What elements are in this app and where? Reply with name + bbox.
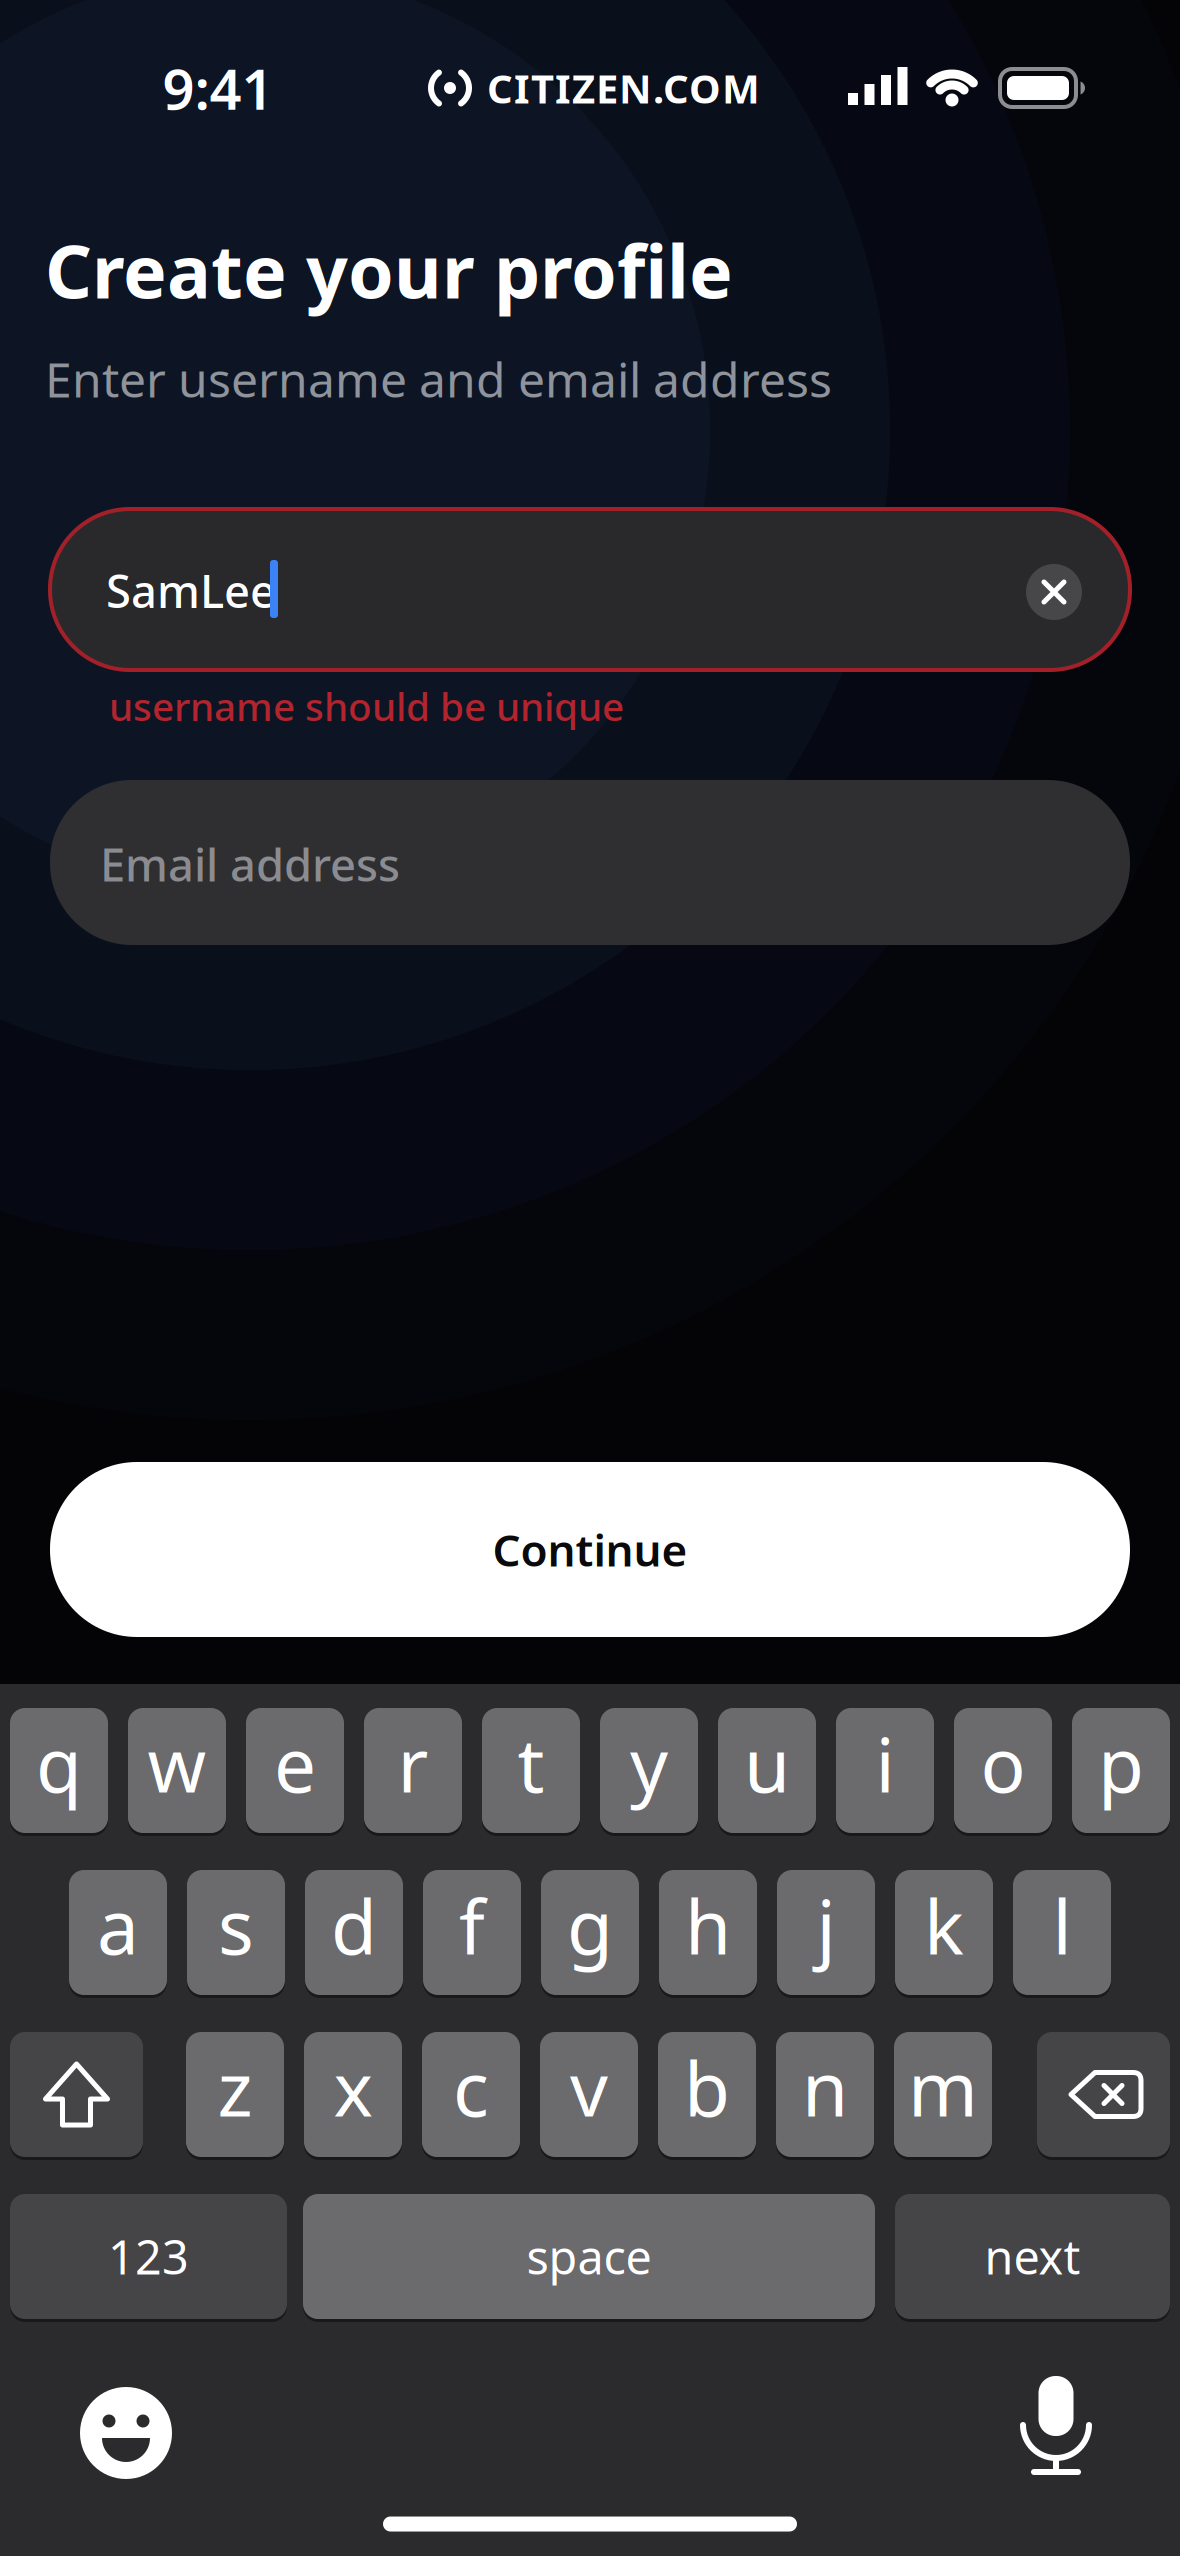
button[interactable]: Delete — [1037, 2030, 1170, 2158]
button[interactable]: l — [1013, 1868, 1111, 1996]
staticText: x — [333, 2038, 372, 2137]
staticText: Continue — [492, 1520, 687, 1579]
staticText: t — [517, 1714, 544, 1813]
button[interactable]: p — [1072, 1706, 1170, 1834]
staticText: 123 — [108, 2225, 189, 2287]
staticText: h — [685, 1876, 731, 1975]
button[interactable]: h — [659, 1868, 757, 1996]
button[interactable]: SamLee — [50, 509, 1130, 670]
staticText: g — [567, 1876, 613, 1975]
staticText: q — [36, 1714, 82, 1813]
button[interactable]: a — [69, 1868, 167, 1996]
button[interactable]: space — [303, 2192, 875, 2320]
staticText: l — [1052, 1876, 1071, 1975]
staticText: p — [1098, 1714, 1144, 1813]
button[interactable]: z — [186, 2030, 284, 2158]
button[interactable]: f — [423, 1868, 521, 1996]
button[interactable]: Emoji — [80, 2387, 172, 2479]
button[interactable]: y — [600, 1706, 698, 1834]
button[interactable]: m — [894, 2030, 992, 2158]
staticText: next — [984, 2225, 1080, 2287]
button[interactable]: s — [187, 1868, 285, 1996]
staticText: b — [684, 2038, 730, 2137]
button[interactable]: o — [954, 1706, 1052, 1834]
button[interactable]: c — [422, 2030, 520, 2158]
staticText: z — [217, 2038, 252, 2137]
button[interactable]: Continue — [50, 1462, 1130, 1637]
staticText: j — [816, 1876, 835, 1975]
staticText: CITIZEN.COM — [487, 61, 760, 114]
button[interactable]: e — [246, 1706, 344, 1834]
staticText: c — [453, 2038, 489, 2137]
button[interactable]: q — [10, 1706, 108, 1834]
staticText: i — [875, 1714, 894, 1813]
staticText: n — [802, 2038, 848, 2137]
staticText: Enter username and email address — [45, 347, 832, 411]
staticText: d — [331, 1876, 377, 1975]
button[interactable]: Email address — [50, 780, 1130, 945]
staticText: y — [630, 1714, 668, 1813]
button[interactable]: r — [364, 1706, 462, 1834]
staticText: v — [570, 2038, 608, 2137]
button[interactable]: Dictation — [999, 2371, 1113, 2485]
button[interactable]: w — [128, 1706, 226, 1834]
button[interactable]: n — [776, 2030, 874, 2158]
staticText: username should be unique — [109, 680, 624, 732]
button[interactable]: i — [836, 1706, 934, 1834]
staticText: 9:41 — [162, 51, 273, 125]
button[interactable]: x — [304, 2030, 402, 2158]
staticText: s — [218, 1876, 254, 1975]
staticText: space — [526, 2225, 651, 2287]
staticText: f — [459, 1876, 485, 1975]
staticText: w — [147, 1714, 206, 1813]
staticText: k — [924, 1876, 964, 1975]
staticText: SamLee — [106, 560, 276, 621]
button[interactable]: d — [305, 1868, 403, 1996]
staticText: Email address — [100, 834, 400, 894]
staticText: u — [744, 1714, 790, 1813]
button[interactable]: t — [482, 1706, 580, 1834]
button[interactable]: k — [895, 1868, 993, 1996]
button[interactable]: b — [658, 2030, 756, 2158]
staticText: m — [908, 2038, 978, 2137]
staticText: e — [274, 1714, 316, 1813]
button[interactable]: j — [777, 1868, 875, 1996]
button[interactable]: v — [540, 2030, 638, 2158]
button[interactable]: next — [895, 2192, 1170, 2320]
staticText: r — [397, 1714, 428, 1813]
button[interactable]: Shift — [10, 2030, 143, 2158]
button[interactable]: Clear text — [1026, 564, 1082, 620]
button[interactable]: g — [541, 1868, 639, 1996]
staticText: o — [980, 1714, 1025, 1813]
staticText: a — [97, 1876, 139, 1975]
button[interactable]: u — [718, 1706, 816, 1834]
staticText: Create your profile — [45, 221, 733, 319]
button[interactable]: 123 — [10, 2192, 287, 2320]
